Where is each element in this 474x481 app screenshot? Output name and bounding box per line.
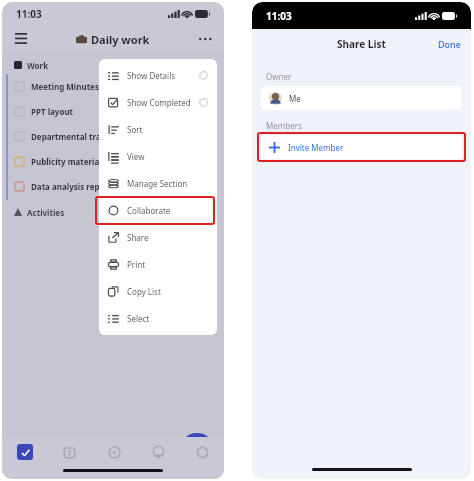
staticText: Show Details [127,70,176,81]
staticText: Publicity materia [31,156,100,167]
button[interactable]: Publicity materia [15,149,224,174]
button[interactable]: Sort [108,116,208,143]
staticText: Share List [337,37,386,51]
button[interactable]: Share [108,224,208,251]
staticText: View [127,151,145,162]
staticText: Sort [127,124,143,135]
button[interactable]: PPT layout [15,99,224,124]
button[interactable]: Add [179,433,215,469]
staticText: Copy List [127,286,161,297]
button[interactable]: Data analysis rep [15,174,224,199]
staticText: Meeting Minutes [31,81,99,92]
staticText: Work [27,60,49,71]
button[interactable]: Me [269,86,462,110]
staticText: Activities [27,207,65,218]
staticText: Collaborate [127,205,171,216]
button[interactable]: Calendar [47,437,92,467]
staticText: PPT layout [31,106,74,117]
staticText: Manage Section [127,178,188,189]
staticText: Data analysis rep [31,181,100,192]
button[interactable]: Departmental tra [15,124,224,149]
button[interactable]: Meeting Minutes [15,74,224,99]
button[interactable]: Manage Section [108,170,208,197]
staticText: 11:03 [266,9,292,23]
button[interactable]: Places [136,437,180,467]
staticText: Show Completed [127,97,191,108]
button[interactable]: Copy List [108,278,208,305]
staticText: Departmental tra [31,131,101,142]
staticText: Share [127,232,149,243]
button[interactable]: Settings [180,437,224,467]
staticText: Select [127,313,150,324]
button[interactable]: Print [108,251,208,278]
button[interactable]: Show Details [108,62,208,89]
button[interactable]: Menu [12,30,30,48]
button[interactable]: Show Completed [108,89,208,116]
staticText: Print [127,259,146,270]
button[interactable]: More options [196,30,214,48]
staticText: Done [438,38,461,50]
button[interactable]: View [108,143,208,170]
button[interactable]: Done [438,38,461,50]
staticText: 11:03 [16,7,42,21]
staticText: Members [266,120,302,131]
staticText: Owner [266,71,292,82]
button[interactable]: Select [108,305,208,332]
staticText: Invite Member [288,142,344,153]
button[interactable]: Collaborate [108,197,208,224]
button[interactable]: Focus [92,437,136,467]
button[interactable]: Tasks [2,437,47,467]
button[interactable]: Invite Member [269,135,462,159]
staticText: Daily work [91,32,150,47]
staticText: Me [289,93,301,104]
